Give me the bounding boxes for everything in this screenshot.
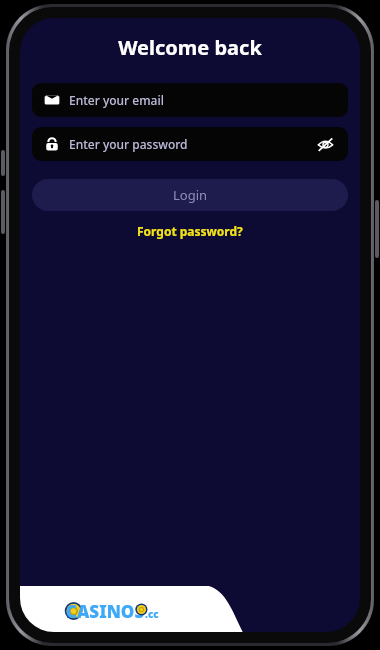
- staticText: Forgot password?: [137, 223, 243, 239]
- staticText: .cc: [145, 607, 159, 621]
- staticText: CASINOS: [66, 600, 145, 623]
- staticText: Enter your password: [69, 136, 188, 152]
- staticText: Enter your email: [69, 92, 164, 108]
- staticText: Login: [173, 186, 208, 204]
- button[interactable]: Enter your email: [32, 83, 348, 117]
- button[interactable]: Show password: [314, 133, 336, 155]
- staticText: Welcome back: [118, 34, 262, 61]
- button[interactable]: Enter your password: [32, 127, 348, 161]
- button[interactable]: Forgot password?: [129, 221, 251, 241]
- button[interactable]: Casinos.cc logo: [64, 599, 168, 623]
- button[interactable]: Login: [32, 179, 348, 211]
